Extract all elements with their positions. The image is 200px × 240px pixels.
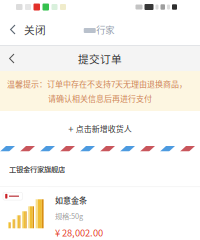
staticText: 温馨提示：订单中存在不支持7天无理由退换商品， [7, 78, 187, 89]
button[interactable]: + [0, 111, 200, 146]
staticText: 关闭 [24, 22, 46, 37]
staticText: 规格:50g [55, 210, 83, 221]
button[interactable]: 关闭 [0, 14, 52, 45]
staticText: 如意金条 [55, 194, 87, 206]
staticText: 提交订单 [78, 51, 122, 66]
staticText: 点击新增收货人 [76, 123, 132, 134]
button[interactable]: 工银金行家旗舰店 [0, 151, 200, 186]
staticText: 请确认相关信息后再进行支付 [48, 92, 152, 104]
staticText: 工银金行家旗舰店 [9, 164, 65, 174]
staticText: + [68, 122, 73, 135]
staticText: ¥ 28,002.00 [55, 226, 103, 239]
button[interactable]: Back [0, 46, 27, 71]
staticText: 行家 [96, 23, 114, 36]
